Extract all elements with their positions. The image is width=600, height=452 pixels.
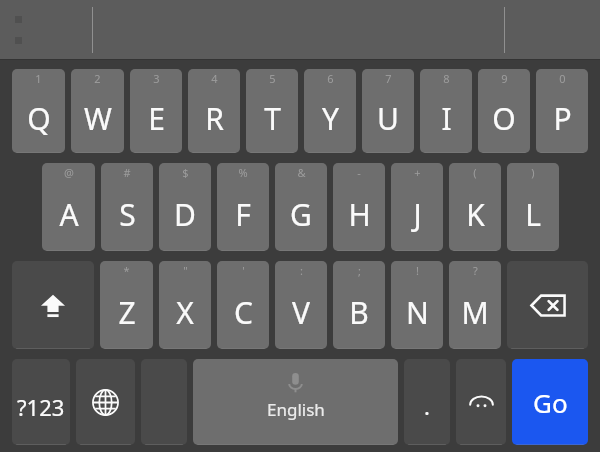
staticText: W (84, 98, 112, 139)
button[interactable]: Go (512, 359, 588, 445)
button[interactable]: ! (391, 261, 443, 349)
staticText: # (123, 165, 131, 180)
staticText: D (174, 194, 196, 235)
staticText: ; (358, 263, 361, 278)
staticText: S (119, 194, 136, 235)
staticText: C (234, 292, 253, 333)
button[interactable]: + (391, 163, 443, 251)
button[interactable]: . (404, 359, 450, 445)
button[interactable]: English (193, 359, 398, 445)
button[interactable]: ( (449, 163, 501, 251)
staticText: ? (473, 263, 478, 278)
staticText: U (377, 98, 399, 139)
staticText: ' (242, 263, 245, 278)
staticText: % (238, 165, 248, 180)
button[interactable]: ?123 (12, 359, 70, 445)
button[interactable]: ) (507, 163, 559, 251)
button[interactable]: 4 (188, 69, 240, 153)
staticText: & (297, 165, 306, 180)
button[interactable]: - (333, 163, 385, 251)
button[interactable]: 6 (304, 69, 356, 153)
staticText: 9 (501, 71, 508, 86)
staticText: M (461, 292, 489, 333)
staticText: 6 (327, 71, 334, 86)
staticText: F (235, 194, 251, 235)
staticText: O (492, 98, 516, 139)
staticText: R (205, 98, 224, 139)
button[interactable]: 3 (130, 69, 182, 153)
staticText: 4 (211, 71, 218, 86)
staticText: English (267, 398, 325, 421)
staticText: ( (473, 165, 477, 180)
staticText: $ (182, 165, 189, 180)
staticText: . (424, 391, 430, 421)
staticText: 8 (443, 71, 450, 86)
staticText: Q (27, 98, 51, 139)
button[interactable]: 1 (12, 69, 65, 153)
staticText: K (466, 194, 485, 235)
button[interactable]: ' (217, 261, 269, 349)
button[interactable]: Backspace (507, 261, 588, 349)
button[interactable]: Emoji (456, 359, 506, 445)
button[interactable]: Change language (76, 359, 135, 445)
button[interactable]: ; (333, 261, 385, 349)
staticText: ?123 (17, 392, 65, 422)
button[interactable]: $ (159, 163, 211, 251)
staticText: ) (531, 165, 535, 180)
button[interactable]: * (100, 261, 153, 349)
staticText: T (264, 98, 281, 139)
staticText: + (414, 165, 421, 180)
staticText: B (349, 292, 369, 333)
staticText: " (183, 263, 188, 278)
staticText: E (148, 98, 165, 139)
button[interactable]: 5 (246, 69, 298, 153)
staticText: Z (118, 292, 136, 333)
staticText: : (300, 263, 303, 278)
button[interactable]: & (275, 163, 327, 251)
button[interactable]: 7 (362, 69, 414, 153)
button[interactable]: 0 (536, 69, 588, 153)
staticText: ! (416, 263, 419, 278)
button[interactable]: @ (42, 163, 95, 251)
staticText: 2 (94, 71, 101, 86)
staticText: I (441, 98, 452, 139)
button[interactable]: " (159, 261, 211, 349)
button[interactable]: : (275, 261, 327, 349)
staticText: 1 (35, 71, 42, 86)
staticText: H (348, 194, 371, 235)
staticText: Y (322, 98, 339, 139)
button[interactable]: 8 (420, 69, 472, 153)
staticText: A (59, 194, 79, 235)
button[interactable]: % (217, 163, 269, 251)
button[interactable]: 9 (478, 69, 530, 153)
staticText: * (123, 263, 130, 278)
staticText: X (176, 292, 194, 333)
staticText: @ (64, 165, 74, 180)
staticText: 7 (385, 71, 392, 86)
button[interactable]: 2 (71, 69, 124, 153)
staticText: - (357, 165, 361, 180)
staticText: J (413, 194, 422, 235)
staticText: L (525, 194, 541, 235)
staticText: N (406, 292, 429, 333)
staticText: 0 (559, 71, 566, 86)
staticText: 5 (269, 71, 276, 86)
staticText: P (553, 98, 572, 139)
button[interactable]: ? (449, 261, 501, 349)
staticText: G (290, 194, 312, 235)
staticText: V (292, 292, 310, 333)
staticText: 3 (153, 71, 160, 86)
staticText: Go (533, 385, 568, 420)
button[interactable]: # (101, 163, 153, 251)
button[interactable]: Shift (12, 261, 94, 349)
